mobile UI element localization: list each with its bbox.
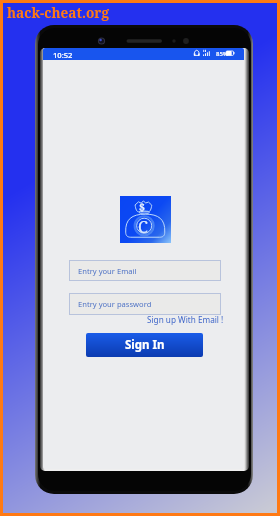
staticText: $ bbox=[139, 200, 145, 214]
staticText: Sign up With Email ! bbox=[147, 314, 224, 325]
button[interactable]: Sign In bbox=[86, 333, 203, 357]
button[interactable]: Sign up With Email ! bbox=[140, 314, 224, 325]
staticText: 10:52 bbox=[53, 50, 73, 60]
staticText: Sign In bbox=[125, 337, 165, 353]
staticText: Entry your password bbox=[78, 299, 152, 309]
button[interactable]: Entry your password bbox=[69, 293, 221, 315]
staticText: hack-cheat.org bbox=[7, 3, 109, 22]
button[interactable]: Entry your Email bbox=[69, 260, 221, 281]
staticText: Entry your Email bbox=[78, 266, 137, 276]
staticText: 85% bbox=[216, 50, 228, 58]
staticText: C bbox=[138, 216, 148, 238]
